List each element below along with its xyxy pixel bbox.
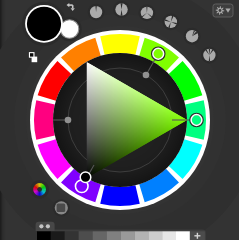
button[interactable]: Colour wheel	[30, 30, 210, 210]
button[interactable]: Foreground colour	[25, 5, 63, 43]
button[interactable]: Palette menu	[35, 221, 55, 231]
button[interactable]: Swap foreground and background	[64, 1, 78, 14]
button[interactable]: Bristle brush	[162, 13, 179, 30]
button[interactable]: Settings	[211, 2, 235, 19]
button[interactable]: Split brush	[201, 47, 218, 64]
button[interactable]: Flat brush	[113, 1, 130, 18]
button[interactable]: Background colour	[61, 21, 79, 39]
button[interactable]: Add swatch	[189, 230, 206, 240]
button[interactable]: Transparency	[53, 200, 70, 217]
button[interactable]: Fan brush	[138, 4, 155, 21]
button[interactable]: Colour wheel mode	[30, 180, 49, 199]
button[interactable]: Round brush	[88, 4, 105, 21]
button[interactable]: Reset default colours	[27, 50, 40, 63]
button[interactable]: Wedge brush	[184, 28, 201, 45]
